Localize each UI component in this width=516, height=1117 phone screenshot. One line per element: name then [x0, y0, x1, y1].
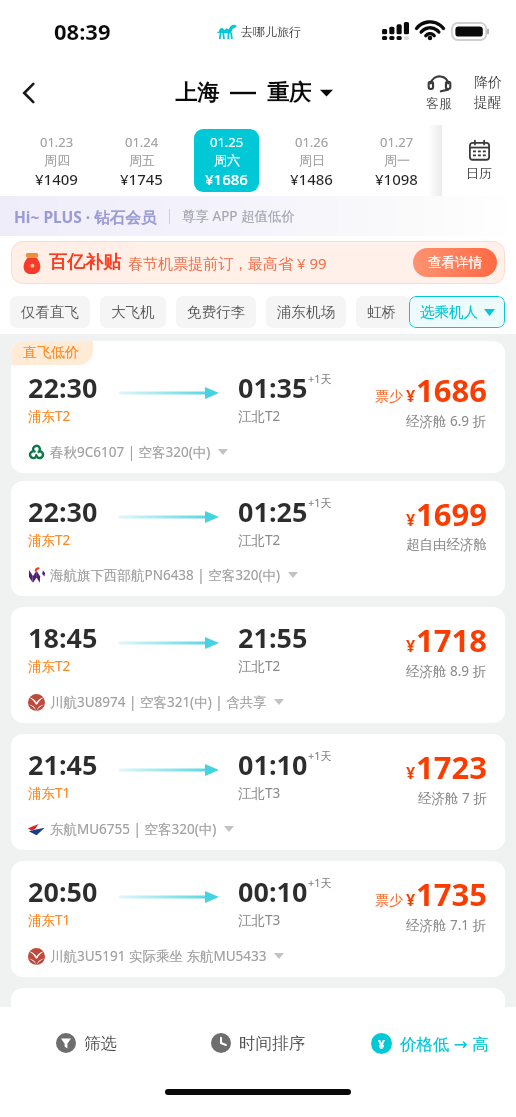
staticText: 浦东T1: [28, 911, 71, 929]
staticText: 18:45: [28, 619, 98, 656]
staticText: 海航旗下西部航PN6438 | 空客320(中): [50, 566, 281, 584]
staticText: 春秋9C6107 | 空客320(中): [50, 443, 211, 461]
staticText: 01.24: [125, 133, 159, 151]
button[interactable]: 20:50: [11, 861, 505, 977]
staticText: 01.25: [210, 133, 244, 151]
staticText: 客服: [426, 95, 452, 111]
button[interactable]: 选乘机人: [409, 296, 505, 328]
staticText: 票少: [375, 892, 403, 910]
staticText: 时间排序: [239, 1033, 305, 1054]
button[interactable]: 免费行李: [176, 296, 256, 328]
button[interactable]: 01.26: [279, 129, 344, 192]
staticText: ¥: [406, 889, 416, 911]
staticText: ¥: [406, 635, 416, 657]
staticText: 上海: [175, 79, 219, 107]
button[interactable]: 时间排序: [172, 1007, 344, 1079]
staticText: 浦东T2: [28, 657, 71, 675]
staticText: 00:10: [238, 873, 308, 910]
staticText: 经济舱 7.1 折: [406, 916, 487, 934]
staticText: 21:55: [238, 619, 308, 656]
staticText: ¥: [378, 1036, 385, 1052]
staticText: 筛选: [84, 1033, 117, 1054]
staticText: 1718: [416, 619, 487, 661]
staticText: +1天: [308, 371, 332, 386]
staticText: 1735: [416, 873, 487, 915]
staticText: 免费行李: [187, 303, 245, 321]
staticText: 票少: [375, 388, 403, 406]
staticText: Hi~ PLUS · 钻石会员: [14, 206, 157, 227]
staticText: 08:39: [54, 16, 111, 46]
staticText: +1天: [308, 875, 332, 890]
button[interactable]: 百亿补贴: [11, 241, 505, 284]
staticText: ¥1486: [290, 169, 333, 189]
button[interactable]: 虹桥机场: [356, 296, 411, 328]
staticText: 川航3U5191 实际乘坐 东航MU5433: [50, 947, 267, 965]
staticText: 经济舱 6.9 折: [406, 412, 487, 430]
button[interactable]: 筛选: [0, 1007, 172, 1079]
staticText: 去哪儿旅行: [241, 24, 301, 39]
staticText: 百亿补贴: [49, 251, 121, 274]
staticText: 周日: [299, 152, 325, 168]
button[interactable]: 22:30: [11, 481, 505, 596]
staticText: 江北T3: [238, 784, 281, 802]
button[interactable]: ¥: [344, 1007, 516, 1079]
button[interactable]: 18:45: [11, 607, 505, 723]
staticText: 01:25: [238, 493, 308, 530]
staticText: 重庆: [267, 79, 311, 107]
staticText: 浦东T2: [28, 407, 71, 425]
staticText: 仅看直飞: [21, 303, 79, 321]
staticText: 1686: [416, 369, 487, 411]
staticText: ¥1409: [35, 169, 78, 189]
staticText: ¥: [406, 385, 416, 407]
staticText: 降价: [474, 74, 502, 92]
staticText: 21:45: [28, 746, 98, 783]
button[interactable]: 降价: [470, 74, 506, 112]
staticText: 江北T2: [238, 531, 281, 549]
staticText: 01.27: [380, 133, 414, 151]
staticText: 22:30: [28, 493, 98, 530]
staticText: 22:30: [28, 369, 98, 406]
button[interactable]: 浦东机场: [266, 296, 346, 328]
staticText: 01.23: [40, 133, 74, 151]
staticText: 川航3U8974 | 空客321(中) | 含共享: [50, 693, 267, 711]
staticText: 01:35: [238, 369, 308, 406]
staticText: 经济舱 7 折: [418, 789, 487, 807]
staticText: +1天: [308, 748, 332, 763]
button[interactable]: 查看详情: [413, 248, 497, 277]
button[interactable]: 01.27: [364, 129, 429, 192]
button[interactable]: 大飞机: [100, 296, 166, 328]
button[interactable]: 21:45: [11, 734, 505, 850]
button[interactable]: Back: [6, 70, 52, 116]
staticText: 01.26: [295, 133, 329, 151]
staticText: ¥: [406, 509, 416, 531]
staticText: 1699: [416, 493, 487, 535]
button[interactable]: 01.25: [194, 129, 259, 192]
button[interactable]: Hi~ PLUS · 钻石会员: [0, 196, 516, 236]
staticText: 超自由经济舱: [406, 536, 487, 553]
staticText: 浦东T1: [28, 784, 71, 802]
staticText: 江北T3: [238, 911, 281, 929]
staticText: 经济舱 8.9 折: [406, 662, 487, 680]
button[interactable]: 上海: [175, 79, 333, 107]
staticText: 浦东T2: [28, 531, 71, 549]
staticText: ¥: [406, 762, 416, 784]
button[interactable]: 01.23: [24, 129, 89, 192]
staticText: 直飞低价: [23, 344, 79, 362]
staticText: 日历: [466, 165, 492, 181]
button[interactable]: 仅看直飞: [10, 296, 90, 328]
staticText: 01:10: [238, 746, 308, 783]
staticText: 价格低 → 高: [400, 1032, 489, 1055]
staticText: 春节机票提前订，最高省 ¥ 99: [128, 253, 327, 273]
button[interactable]: 日历: [442, 125, 516, 196]
staticText: 大飞机: [111, 303, 155, 321]
button[interactable]: 客服: [418, 75, 460, 111]
staticText: 周六: [214, 152, 240, 168]
staticText: ¥1098: [375, 169, 418, 189]
button[interactable]: 01.24: [109, 129, 174, 192]
staticText: 提醒: [474, 94, 502, 112]
staticText: 江北T2: [238, 407, 281, 425]
staticText: 东航MU6755 | 空客320(中): [50, 820, 217, 838]
button[interactable]: 直飞低价: [11, 341, 505, 473]
staticText: +1天: [308, 495, 332, 510]
